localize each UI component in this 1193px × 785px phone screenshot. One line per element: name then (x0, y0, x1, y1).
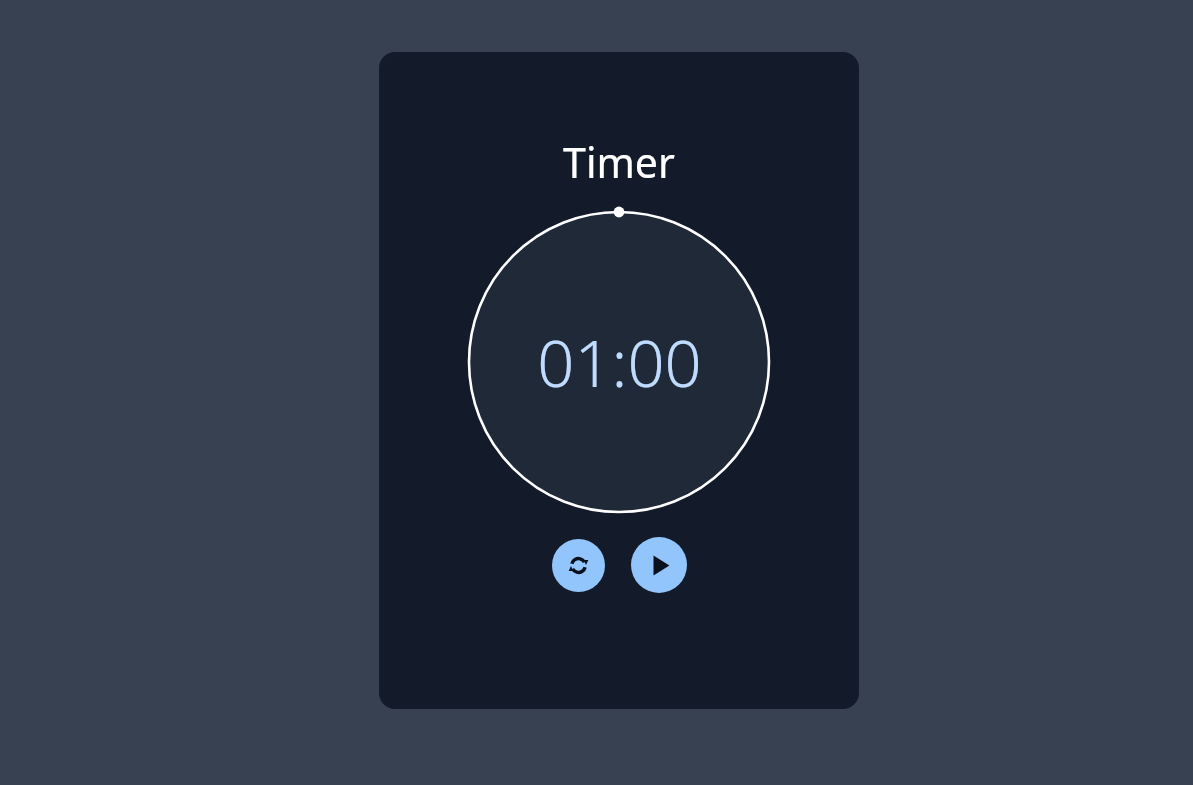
button[interactable]: Reset timer (552, 539, 605, 592)
staticText: 01:00 (537, 318, 702, 407)
staticText: Timer (563, 134, 675, 190)
button[interactable]: Start timer (631, 537, 687, 593)
